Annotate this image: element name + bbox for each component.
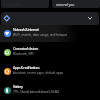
staticText: Wi-Fi, mobile, data usage, and hotspot — [13, 33, 67, 37]
staticText: Network & internet — [13, 27, 39, 32]
button[interactable]: Network & internet — [0, 25, 100, 44]
button[interactable]: Apps & notifications — [0, 63, 100, 82]
button[interactable]: Connected devices — [0, 44, 100, 63]
staticText: Assistant, recent apps, default apps — [13, 71, 63, 75]
staticText: Apps & notifications — [13, 65, 40, 70]
button[interactable]: Battery — [0, 82, 100, 100]
staticText: 77% - Should last until about 5:30 AM — [13, 90, 59, 94]
button[interactable]: around you — [52, 0, 100, 8]
staticText: Connected devices — [13, 46, 38, 51]
staticText: around you — [56, 2, 75, 7]
staticText: Bluetooth, NFC — [13, 52, 35, 56]
staticText: Battery — [13, 84, 23, 89]
button[interactable] — [1, 12, 99, 25]
